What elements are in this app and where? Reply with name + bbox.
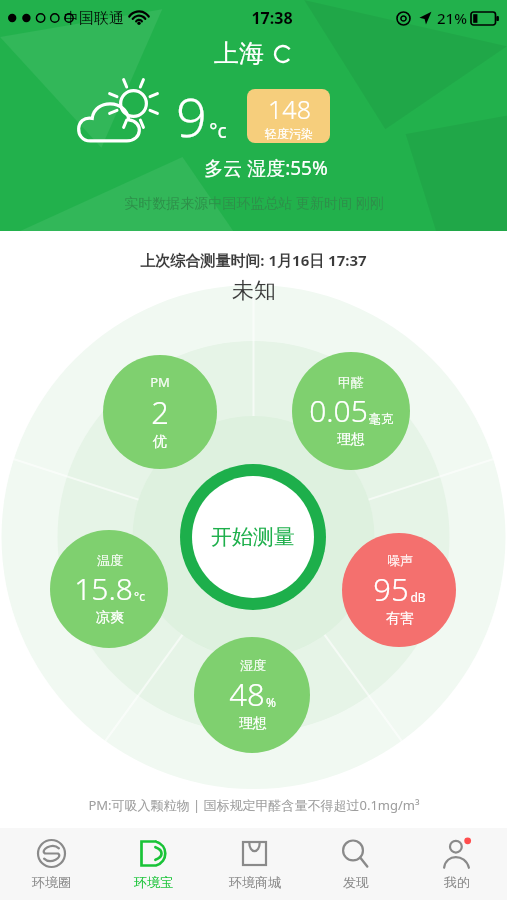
staticText: 2 [151, 391, 169, 433]
staticText: 95 [373, 568, 409, 610]
staticText: 开始测量 [211, 524, 295, 550]
staticText: 湿度 [240, 657, 266, 673]
button[interactable]: 湿度 [194, 637, 310, 753]
button[interactable]: 环境圈 [0, 828, 102, 900]
staticText: 优 [153, 433, 167, 451]
staticText: 上海 [214, 38, 264, 69]
button[interactable]: 开始测量 [192, 476, 314, 598]
button[interactable]: 环境商城 [204, 828, 305, 900]
staticText: dB [410, 589, 426, 605]
button[interactable]: 甲醛 [292, 352, 410, 470]
staticText: 9 [176, 79, 207, 153]
staticText: 多云 湿度:55% [204, 155, 328, 181]
staticText: °c [134, 588, 145, 604]
staticText: 理想 [239, 715, 267, 733]
staticText: 发现 [343, 874, 369, 890]
button[interactable]: 噪声 [342, 533, 456, 647]
staticText: 凉爽 [96, 609, 124, 627]
staticText: % [266, 694, 276, 710]
staticText: 环境宝 [134, 874, 173, 890]
staticText: 中国联通 [64, 9, 124, 28]
staticText: 毫克 [369, 411, 393, 426]
staticText: 环境圈 [32, 874, 71, 890]
button[interactable]: 环境宝 [102, 828, 204, 900]
button[interactable]: 我的 [406, 828, 507, 900]
button[interactable]: Refresh [273, 44, 293, 64]
staticText: 理想 [337, 431, 365, 449]
staticText: 甲醛 [338, 374, 364, 390]
staticText: 15.8 [74, 568, 133, 609]
staticText: 0.05 [309, 390, 368, 431]
staticText: 我的 [444, 874, 470, 890]
staticText: 21% [437, 8, 467, 28]
button[interactable]: 发现 [305, 828, 406, 900]
staticText: PM:可吸入颗粒物 | 国标规定甲醛含量不得超过0.1mg/m³ [88, 796, 420, 814]
staticText: 有害 [386, 610, 414, 628]
staticText: 上次综合测量时间: 1月16日 17:37 [140, 250, 367, 270]
button[interactable]: 148 [247, 89, 330, 143]
staticText: 未知 [232, 277, 276, 305]
staticText: 实时数据来源中国环监总站 更新时间 刚刚 [124, 193, 384, 212]
staticText: 环境商城 [229, 874, 281, 890]
staticText: 轻度污染 [265, 126, 313, 141]
staticText: 148 [268, 92, 311, 126]
staticText: 17:38 [251, 7, 293, 29]
button[interactable]: PM [103, 355, 217, 469]
button[interactable]: 温度 [50, 530, 168, 648]
staticText: 48 [229, 673, 265, 715]
staticText: PM [150, 373, 170, 391]
staticText: 温度 [97, 552, 123, 568]
staticText: 噪声 [387, 552, 413, 568]
staticText: °c [209, 118, 227, 144]
